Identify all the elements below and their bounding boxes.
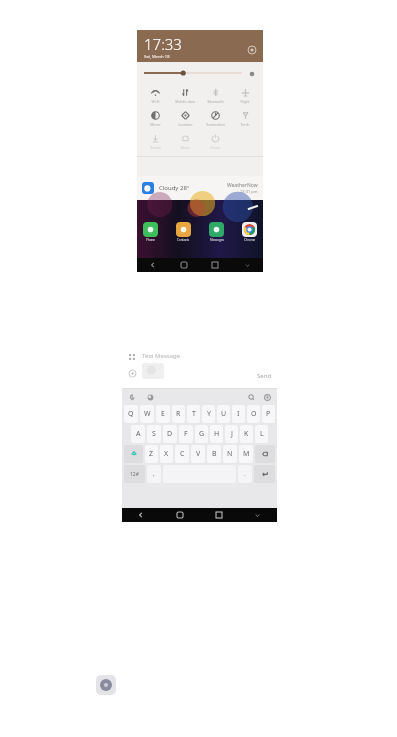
staticText: Text Message — [142, 352, 181, 360]
button[interactable]: Add — [127, 368, 138, 379]
button[interactable]: Hide keyboard — [238, 508, 277, 522]
button[interactable]: Stickers — [145, 392, 155, 402]
button[interactable]: Z — [145, 445, 158, 463]
button[interactable]: Attach — [127, 352, 138, 363]
button[interactable]: A — [131, 425, 145, 443]
button[interactable]: E — [156, 405, 170, 423]
button[interactable]: Search — [246, 392, 256, 402]
button[interactable]: Recents — [199, 258, 231, 272]
staticText: Q — [128, 409, 134, 419]
button[interactable]: Shift — [124, 445, 143, 463]
staticText: I — [237, 409, 240, 419]
button[interactable]: Mirror — [140, 107, 170, 130]
button[interactable]: Q — [124, 405, 138, 423]
button[interactable]: S — [147, 425, 161, 443]
staticText: V — [196, 449, 201, 459]
button[interactable]: P — [262, 405, 275, 423]
button[interactable]: Screenshot — [200, 107, 230, 130]
button[interactable]: G — [195, 425, 208, 443]
staticText: Sat, March 18 — [144, 54, 170, 59]
button[interactable]: Send — [257, 372, 272, 380]
button[interactable]: Power — [200, 130, 230, 153]
staticText: Contacts — [177, 238, 190, 242]
staticText: B — [212, 449, 217, 459]
button[interactable]: J — [225, 425, 238, 443]
staticText: WeatherNow — [227, 182, 258, 189]
button[interactable]: Recents — [199, 508, 238, 522]
button[interactable]: Location — [170, 107, 200, 130]
button[interactable]: Back — [137, 258, 168, 272]
button[interactable]: Chrome — [242, 222, 257, 237]
button[interactable]: C — [175, 445, 189, 463]
staticText: Phone — [146, 238, 156, 242]
staticText: Send — [257, 372, 272, 380]
staticText: C — [180, 449, 185, 459]
button[interactable]: Auto brightness — [247, 69, 256, 78]
staticText: M — [243, 449, 250, 459]
button[interactable]: Enter — [254, 465, 275, 483]
button[interactable]: Hide keyboard — [231, 258, 263, 272]
button[interactable]: 12# — [124, 465, 145, 483]
staticText: G — [199, 429, 205, 439]
button[interactable]: M — [239, 445, 253, 463]
staticText: Chrome — [244, 238, 256, 242]
button[interactable]: H — [210, 425, 223, 443]
button[interactable]: V — [191, 445, 205, 463]
button[interactable]: D — [163, 425, 177, 443]
staticText: , — [153, 470, 155, 478]
staticText: Location — [178, 122, 193, 127]
staticText: Z — [149, 449, 154, 459]
staticText: Wi-Fi — [151, 99, 160, 104]
button[interactable]: O — [247, 405, 260, 423]
button[interactable]: F — [179, 425, 193, 443]
button[interactable]: Bluetooth — [200, 84, 230, 107]
staticText: 17:33 — [144, 34, 182, 54]
button[interactable]: Contacts — [176, 222, 191, 237]
button[interactable]: X — [160, 445, 173, 463]
button[interactable]: Flight — [230, 84, 260, 107]
button[interactable]: Wi-Fi — [140, 84, 170, 107]
button[interactable]: Torch — [230, 107, 260, 130]
button[interactable]: Back — [122, 508, 160, 522]
button[interactable]: Settings — [247, 45, 257, 55]
button[interactable]: Cloudy 28° — [142, 176, 258, 200]
staticText: Flight — [240, 99, 250, 104]
staticText: U — [221, 409, 227, 419]
button[interactable]: Messages — [209, 222, 224, 237]
button[interactable]: . — [238, 465, 252, 483]
button[interactable]: Home — [160, 508, 199, 522]
button[interactable] — [144, 67, 242, 79]
button[interactable]: Y — [202, 405, 215, 423]
button[interactable]: I — [232, 405, 245, 423]
staticText: E — [161, 409, 165, 419]
staticText: Cloudy 28° — [159, 184, 190, 192]
button[interactable]: N — [223, 445, 237, 463]
staticText: . — [244, 470, 246, 478]
button[interactable]: Silent — [170, 130, 200, 153]
button[interactable]: U — [217, 405, 230, 423]
staticText: Bluetooth — [207, 99, 224, 104]
button[interactable]: K — [240, 425, 253, 443]
button[interactable]: Mobile data — [170, 84, 200, 107]
button[interactable]: B — [207, 445, 221, 463]
staticText: X — [164, 449, 169, 459]
button[interactable]: Home — [168, 258, 199, 272]
button[interactable]: Keyboard settings — [262, 392, 272, 402]
staticText: J — [231, 429, 233, 439]
button[interactable]: Phone — [143, 222, 158, 237]
staticText: H — [214, 429, 220, 439]
button[interactable]: Rotate — [140, 130, 170, 153]
button[interactable]: Backspace — [255, 445, 275, 463]
staticText: Torch — [240, 122, 250, 127]
staticText: N — [227, 449, 233, 459]
button[interactable]: App icon — [96, 675, 116, 695]
button[interactable]: , — [147, 465, 161, 483]
button[interactable]: R — [172, 405, 185, 423]
button[interactable]: W — [140, 405, 154, 423]
staticText: O — [251, 409, 257, 419]
button[interactable]: L — [255, 425, 268, 443]
staticText: W — [144, 409, 151, 419]
button[interactable]: T — [187, 405, 200, 423]
button[interactable]: Handwriting — [127, 392, 137, 402]
